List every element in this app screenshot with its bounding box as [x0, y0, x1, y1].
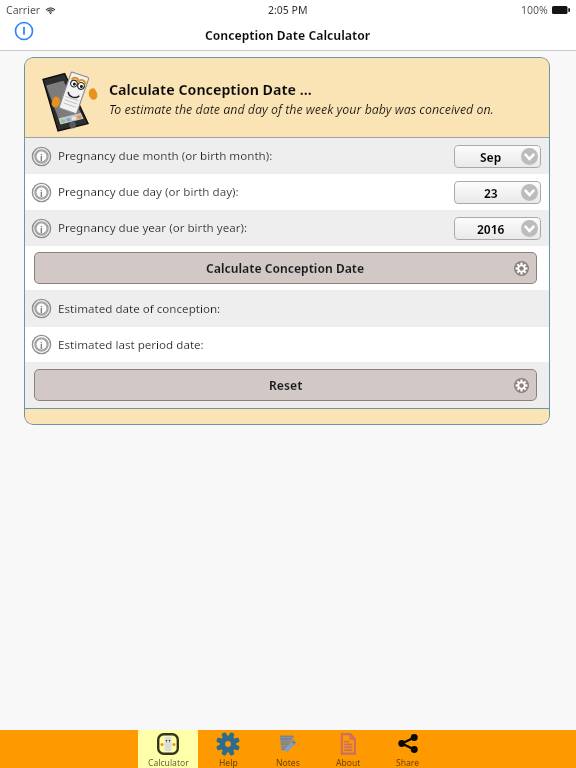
staticText: Calculate Conception Date ... — [109, 80, 312, 99]
staticText: Sep — [480, 149, 502, 165]
staticText: To estimate the date and day of the week… — [109, 101, 494, 118]
button[interactable]: i — [24, 290, 550, 327]
staticText: Help — [219, 757, 238, 768]
button[interactable]: Calculate Conception Date — [34, 252, 537, 284]
staticText: i — [40, 151, 43, 163]
staticText: Pregnancy due year (or birth year): — [58, 220, 248, 236]
button[interactable]: Sep — [454, 145, 541, 168]
staticText: i — [40, 303, 43, 315]
staticText: Share — [396, 757, 420, 768]
staticText: Estimated last period date: — [58, 337, 204, 353]
staticText: About — [336, 757, 361, 768]
button[interactable]: Reset — [34, 369, 537, 401]
staticText: Estimated date of conception: — [58, 301, 221, 317]
staticText: i — [40, 187, 43, 199]
staticText: 2016 — [477, 221, 505, 237]
button[interactable]: i — [24, 138, 550, 174]
staticText: Pregnancy due month (or birth month): — [58, 148, 273, 164]
button[interactable]: 2016 — [454, 217, 541, 240]
staticText: i — [40, 223, 43, 235]
staticText: 100% — [521, 3, 548, 17]
button[interactable]: Calculator — [138, 730, 198, 768]
staticText: Calculate Conception Date — [206, 260, 365, 276]
staticText: i — [40, 339, 43, 351]
button[interactable]: About — [318, 730, 378, 768]
button[interactable]: 23 — [454, 181, 541, 204]
staticText: 2:05 PM — [268, 3, 308, 17]
button[interactable]: i — [24, 327, 550, 362]
staticText: Notes — [276, 757, 300, 768]
button[interactable]: Info — [11, 18, 37, 44]
staticText: Conception Date Calculator — [205, 27, 371, 43]
staticText: Pregnancy due day (or birth day): — [58, 184, 239, 200]
staticText: 23 — [484, 185, 498, 201]
staticText: Calculator — [148, 757, 189, 768]
button[interactable]: i — [24, 174, 550, 210]
button[interactable]: Share — [378, 730, 438, 768]
button[interactable]: Notes — [258, 730, 318, 768]
button[interactable]: Help — [198, 730, 258, 768]
staticText: Carrier — [6, 3, 41, 17]
button[interactable]: i — [24, 210, 550, 246]
staticText: Reset — [269, 377, 303, 393]
